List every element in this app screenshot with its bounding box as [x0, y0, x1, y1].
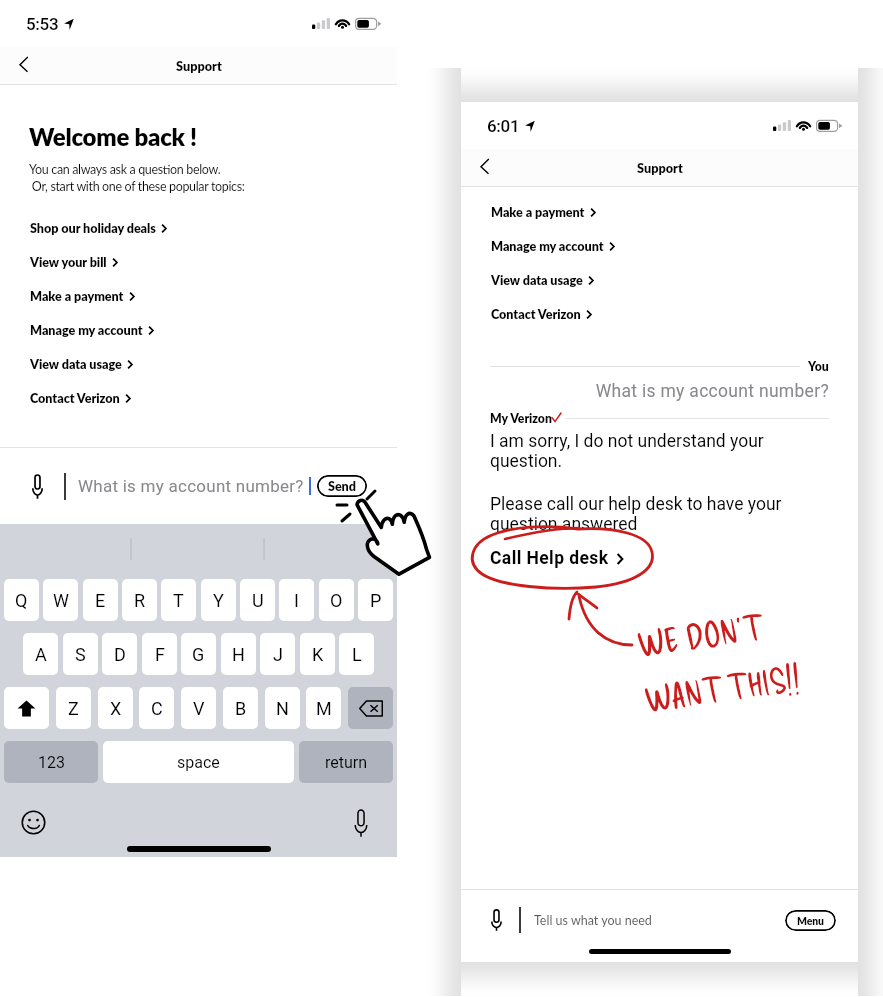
button[interactable]: N	[265, 687, 300, 729]
staticText: Welcome back !	[29, 122, 197, 151]
button[interactable]: View your bill	[0, 245, 397, 279]
button[interactable]: Voice input	[490, 909, 503, 931]
button[interactable]: Contact Verizon	[461, 297, 858, 331]
button[interactable]: C	[139, 687, 174, 729]
button[interactable]: Voice input	[31, 474, 44, 499]
button[interactable]: D	[102, 633, 137, 675]
button[interactable]: Send	[317, 475, 367, 497]
staticText: Support	[637, 160, 683, 175]
button[interactable]: B	[223, 687, 258, 729]
button[interactable]: Contact Verizon	[0, 381, 397, 415]
staticText: 6:01	[487, 116, 520, 136]
staticText: space	[177, 753, 220, 772]
staticText: Contact Verizon	[491, 307, 581, 322]
button[interactable]: U	[240, 579, 275, 621]
button[interactable]: L	[339, 633, 374, 675]
staticText: P	[370, 590, 382, 611]
button[interactable]: F	[142, 633, 177, 675]
staticText: N	[276, 698, 289, 719]
staticText: You can always ask a question below. Or,…	[29, 162, 245, 194]
staticText: My Verizon	[490, 411, 552, 426]
staticText: E	[95, 590, 106, 611]
button[interactable]: space	[103, 741, 294, 783]
button[interactable]: Make a payment	[461, 195, 858, 229]
staticText: K	[312, 644, 324, 665]
staticText: You	[808, 359, 829, 374]
staticText: View data usage	[30, 357, 122, 372]
staticText: D	[114, 644, 126, 665]
button[interactable]: S	[63, 633, 98, 675]
staticText: Y	[213, 590, 224, 611]
staticText: G	[192, 644, 205, 665]
button[interactable]: X	[98, 687, 133, 729]
staticText: J	[273, 644, 283, 665]
staticText: S	[75, 644, 86, 665]
button[interactable]: P	[358, 579, 393, 621]
button[interactable]: H	[221, 633, 256, 675]
staticText: B	[235, 698, 247, 719]
staticText: View data usage	[491, 273, 583, 288]
button[interactable]: J	[260, 633, 295, 675]
button[interactable]: 123	[4, 741, 98, 783]
staticText: W	[53, 590, 69, 611]
staticText: U	[252, 590, 264, 611]
button[interactable]: Z	[56, 687, 91, 729]
button[interactable]: Q	[4, 579, 39, 621]
staticText: A	[35, 644, 47, 665]
staticText: Send	[328, 479, 356, 494]
button[interactable]: return	[299, 741, 393, 783]
staticText: Q	[15, 590, 28, 611]
staticText: H	[232, 644, 245, 665]
staticText: Contact Verizon	[30, 391, 120, 406]
button[interactable]: Y	[201, 579, 236, 621]
button[interactable]: Shift	[4, 687, 49, 729]
staticText: Manage my account	[30, 323, 143, 338]
staticText: O	[330, 590, 343, 611]
staticText: Support	[176, 58, 222, 73]
staticText: R	[134, 590, 146, 611]
button[interactable]: Back	[472, 154, 492, 182]
button[interactable]: Call Help desk	[490, 545, 625, 572]
button[interactable]: O	[319, 579, 354, 621]
button[interactable]: G	[181, 633, 216, 675]
button[interactable]: I	[279, 579, 314, 621]
staticText: Z	[68, 698, 79, 719]
button[interactable]: E	[83, 579, 118, 621]
staticText: M	[316, 698, 332, 719]
button[interactable]: R	[122, 579, 157, 621]
staticText: C	[151, 698, 163, 719]
button[interactable]: A	[23, 633, 58, 675]
staticText: return	[325, 753, 368, 772]
button[interactable]: Make a payment	[0, 279, 397, 313]
staticText: Manage my account	[491, 239, 604, 254]
staticText: Make a payment	[30, 289, 124, 304]
button[interactable]: Back	[11, 52, 31, 80]
button[interactable]: Manage my account	[461, 229, 858, 263]
button[interactable]: T	[161, 579, 196, 621]
staticText: What is my account number?	[461, 381, 829, 402]
button[interactable]: Menu	[785, 910, 836, 931]
button[interactable]: Delete	[348, 687, 393, 729]
staticText: Call Help desk	[490, 548, 609, 569]
staticText: What is my account number?	[78, 476, 304, 496]
button[interactable]: View data usage	[0, 347, 397, 381]
button[interactable]: W	[43, 579, 78, 621]
button[interactable]: View data usage	[461, 263, 858, 297]
staticText: V	[193, 698, 205, 719]
staticText: Please call our help desk to have your q…	[490, 494, 808, 534]
button[interactable]: Manage my account	[0, 313, 397, 347]
staticText: Shop our holiday deals	[30, 221, 156, 236]
staticText: I am sorry, I do not understand your que…	[490, 431, 808, 471]
staticText: WANT THIS!!	[642, 657, 803, 720]
button[interactable]: Dictate	[353, 809, 369, 837]
staticText: View your bill	[30, 255, 107, 270]
button[interactable]: M	[306, 687, 341, 729]
staticText: WE DON'T	[635, 607, 763, 664]
button[interactable]: V	[181, 687, 216, 729]
button[interactable]: Shop our holiday deals	[0, 211, 397, 245]
staticText: Make a payment	[491, 205, 585, 220]
staticText: X	[110, 698, 122, 719]
staticText: F	[155, 644, 165, 665]
button[interactable]: Emoji	[21, 810, 46, 835]
button[interactable]: K	[300, 633, 335, 675]
